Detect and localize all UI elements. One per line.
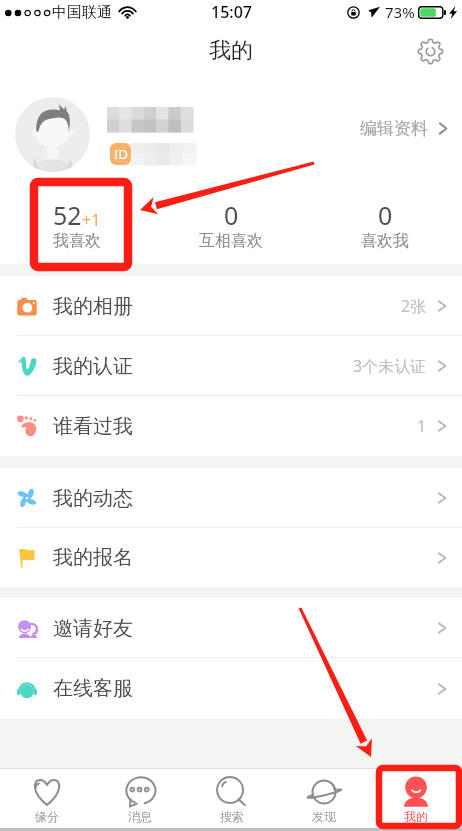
button[interactable]: Settings bbox=[410, 31, 450, 71]
staticText: 0 bbox=[378, 198, 393, 232]
staticText: ID bbox=[114, 145, 128, 163]
staticText: 15:07 bbox=[211, 1, 252, 23]
staticText: 在线客服 bbox=[53, 676, 133, 701]
staticText: 我的认证 bbox=[53, 354, 133, 379]
staticText: 谁看过我 bbox=[53, 414, 133, 439]
staticText: 我的动态 bbox=[53, 486, 133, 511]
staticText: 中国联通 bbox=[52, 3, 112, 22]
button[interactable]: 消息 bbox=[93, 769, 186, 828]
staticText: 73% bbox=[385, 2, 415, 22]
staticText: 喜欢我 bbox=[361, 231, 409, 251]
button[interactable]: 搜索 bbox=[186, 769, 278, 828]
button[interactable]: 谁看过我 bbox=[0, 396, 462, 456]
button[interactable]: 0 bbox=[308, 178, 462, 264]
staticText: 52 bbox=[53, 198, 82, 232]
staticText: 3个未认证 bbox=[353, 355, 427, 377]
staticText: 1 bbox=[417, 415, 427, 437]
button[interactable]: 我的动态 bbox=[0, 468, 462, 528]
staticText: 我的 bbox=[404, 809, 428, 824]
staticText: 我喜欢 bbox=[53, 231, 101, 251]
staticText: 邀请好友 bbox=[53, 616, 133, 641]
button[interactable]: 52 bbox=[0, 178, 154, 264]
button[interactable]: 我的相册 bbox=[0, 276, 462, 336]
staticText: 编辑资料 bbox=[360, 118, 428, 139]
button[interactable]: 在线客服 bbox=[0, 658, 462, 719]
staticText: 0 bbox=[224, 198, 239, 232]
button[interactable]: 我的 bbox=[370, 769, 462, 828]
staticText: 我的报名 bbox=[53, 545, 133, 570]
button[interactable]: 我的认证 bbox=[0, 336, 462, 396]
staticText: +1 bbox=[82, 209, 101, 231]
button[interactable]: 发现 bbox=[278, 769, 370, 828]
staticText: 我的相册 bbox=[53, 294, 133, 319]
staticText: 2张 bbox=[401, 295, 427, 317]
staticText: 搜索 bbox=[220, 809, 244, 824]
button[interactable]: 我的报名 bbox=[0, 528, 462, 587]
staticText: 缘分 bbox=[35, 809, 59, 824]
button[interactable]: ID bbox=[0, 78, 462, 178]
button[interactable]: 邀请好友 bbox=[0, 598, 462, 658]
button[interactable]: 0 bbox=[154, 178, 308, 264]
staticText: 消息 bbox=[128, 809, 152, 824]
button[interactable]: 缘分 bbox=[0, 769, 93, 828]
staticText: 发现 bbox=[312, 809, 336, 824]
staticText: 我的 bbox=[209, 37, 253, 65]
staticText: 互相喜欢 bbox=[199, 231, 263, 251]
